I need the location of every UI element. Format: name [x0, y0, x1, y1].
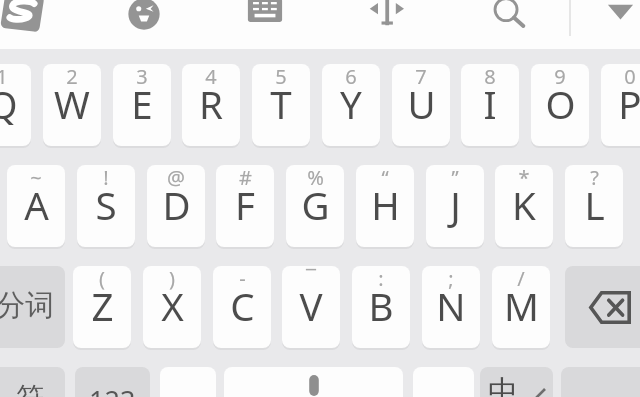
staticText: 4 [205, 64, 217, 90]
button[interactable]: % [286, 165, 344, 247]
staticText: ; [448, 266, 454, 292]
staticText: ( [99, 266, 105, 292]
staticText: B [368, 280, 394, 332]
button[interactable]: ; [422, 266, 480, 348]
button[interactable]: 符 [0, 367, 65, 397]
staticText: W [54, 78, 90, 130]
staticText: ~ [30, 165, 42, 191]
staticText: U [407, 78, 436, 130]
staticText: Y [340, 78, 362, 130]
button[interactable]: ( [73, 266, 131, 348]
staticText: 8 [484, 64, 496, 90]
button[interactable]: 7 [392, 64, 450, 146]
button[interactable]: # [216, 165, 274, 247]
staticText: R [199, 78, 223, 130]
button[interactable]: Move cursor [366, 0, 408, 37]
button[interactable]: ~ [7, 165, 65, 247]
button[interactable]: 123 [75, 367, 150, 397]
button[interactable]: - [213, 266, 271, 348]
staticText: L [584, 179, 605, 231]
button[interactable]: 3 [113, 64, 171, 146]
staticText: Q [0, 78, 18, 130]
staticText: 0 [624, 64, 636, 90]
staticText: ? [590, 165, 599, 191]
button[interactable]: * [495, 165, 553, 247]
staticText: 5 [275, 64, 287, 90]
button[interactable]: Search [488, 0, 526, 29]
staticText: - [239, 266, 246, 292]
staticText: E [131, 78, 153, 130]
button[interactable]: 6 [322, 64, 380, 146]
staticText: @ [167, 165, 185, 191]
staticText: V [299, 280, 323, 332]
staticText: 123 [89, 382, 136, 397]
button[interactable]: Chinese English toggle [480, 367, 553, 397]
button[interactable]: 2 [43, 64, 101, 146]
staticText: O [545, 78, 576, 130]
staticText: F [235, 179, 255, 231]
staticText: K [512, 179, 536, 231]
staticText: N [436, 280, 466, 332]
staticText: “ [381, 165, 389, 191]
button[interactable]: Space [224, 367, 403, 397]
staticText: 2 [66, 64, 78, 90]
staticText: P [618, 78, 640, 130]
staticText: ¯ [306, 266, 316, 292]
staticText: 1 [0, 64, 8, 90]
staticText: # [239, 165, 252, 191]
staticText: 分词 [0, 287, 54, 324]
staticText: D [162, 179, 191, 231]
staticText: T [270, 78, 292, 130]
button[interactable]: ¯ [282, 266, 340, 348]
staticText: : [378, 266, 384, 292]
button[interactable]: 分词 [0, 266, 65, 348]
button[interactable]: Emoji [127, 0, 161, 31]
button[interactable]: Sogou input settings [0, 0, 49, 35]
staticText: % [307, 165, 324, 191]
staticText: / [517, 266, 525, 292]
staticText: 6 [345, 64, 357, 90]
staticText: H [371, 179, 400, 231]
staticText: G [301, 179, 330, 231]
button[interactable]: : [352, 266, 410, 348]
button[interactable]: 9 [531, 64, 589, 146]
button[interactable]: 8 [461, 64, 519, 146]
button[interactable]: “ [356, 165, 414, 247]
staticText: 符 [16, 380, 44, 397]
button[interactable]: ) [143, 266, 201, 348]
button[interactable]: / [492, 266, 550, 348]
staticText: Z [91, 280, 114, 332]
button[interactable]: 5 [252, 64, 310, 146]
staticText: 3 [136, 64, 148, 90]
staticText: 7 [415, 64, 427, 90]
button[interactable]: Hide keyboard [604, 0, 638, 34]
button[interactable]: @ [147, 165, 205, 247]
staticText: 中 [488, 373, 518, 397]
staticText: S [95, 179, 117, 231]
staticText: A [24, 179, 49, 231]
staticText: ) [169, 266, 175, 292]
staticText: 9 [554, 64, 566, 90]
button[interactable]: 4 [182, 64, 240, 146]
button[interactable]: 1 [0, 64, 31, 146]
staticText: ! [103, 165, 109, 191]
button[interactable]: ” [426, 165, 484, 247]
button[interactable]: 0 [601, 64, 640, 146]
staticText: I [483, 78, 497, 130]
staticText: X [161, 280, 184, 332]
staticText: C [230, 280, 255, 332]
staticText: * [518, 165, 530, 191]
button[interactable]: ? [565, 165, 623, 247]
staticText: J [450, 179, 461, 231]
button[interactable]: Switch keyboard layout [246, 0, 284, 33]
staticText: ” [451, 165, 459, 191]
staticText: M [504, 280, 539, 332]
button[interactable]: ! [77, 165, 135, 247]
button[interactable]: Backspace [565, 266, 640, 348]
